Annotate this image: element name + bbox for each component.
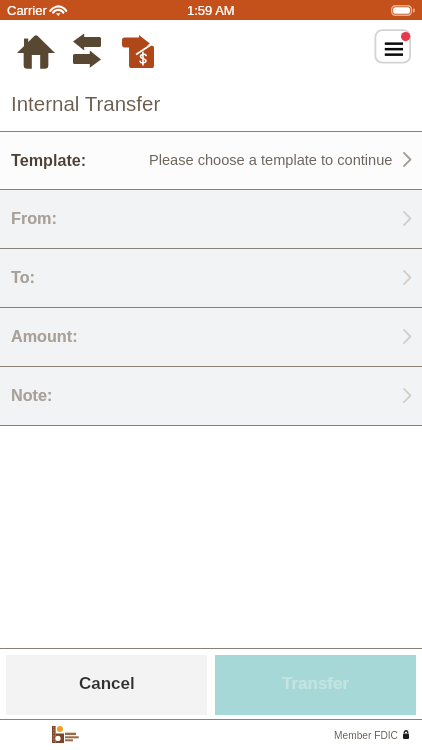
button[interactable]: Home bbox=[13, 29, 59, 73]
button[interactable]: Note: bbox=[0, 367, 422, 425]
button[interactable]: To: bbox=[0, 249, 422, 307]
button[interactable]: Cancel bbox=[6, 655, 207, 715]
button[interactable]: From: bbox=[0, 190, 422, 248]
staticText: Template: bbox=[11, 151, 87, 169]
button[interactable]: Amount: bbox=[0, 308, 422, 366]
button[interactable]: Transfer bbox=[215, 655, 416, 715]
staticText: Internal Transfer bbox=[11, 92, 161, 115]
staticText: Transfer bbox=[282, 674, 350, 693]
staticText: Carrier bbox=[7, 3, 47, 18]
button[interactable]: Pay bbox=[117, 28, 161, 74]
staticText: Cancel bbox=[79, 674, 135, 693]
button[interactable]: Menu bbox=[372, 27, 414, 69]
staticText: To: bbox=[11, 268, 35, 286]
staticText: Amount: bbox=[11, 327, 78, 345]
button[interactable]: Template: bbox=[0, 132, 422, 189]
staticText: 1:59 AM bbox=[187, 3, 235, 18]
button[interactable]: Transfers bbox=[68, 28, 106, 74]
staticText: Member FDIC bbox=[334, 730, 398, 741]
staticText: From: bbox=[11, 209, 57, 227]
staticText: Note: bbox=[11, 386, 53, 404]
staticText: Please choose a template to continue bbox=[149, 152, 393, 168]
